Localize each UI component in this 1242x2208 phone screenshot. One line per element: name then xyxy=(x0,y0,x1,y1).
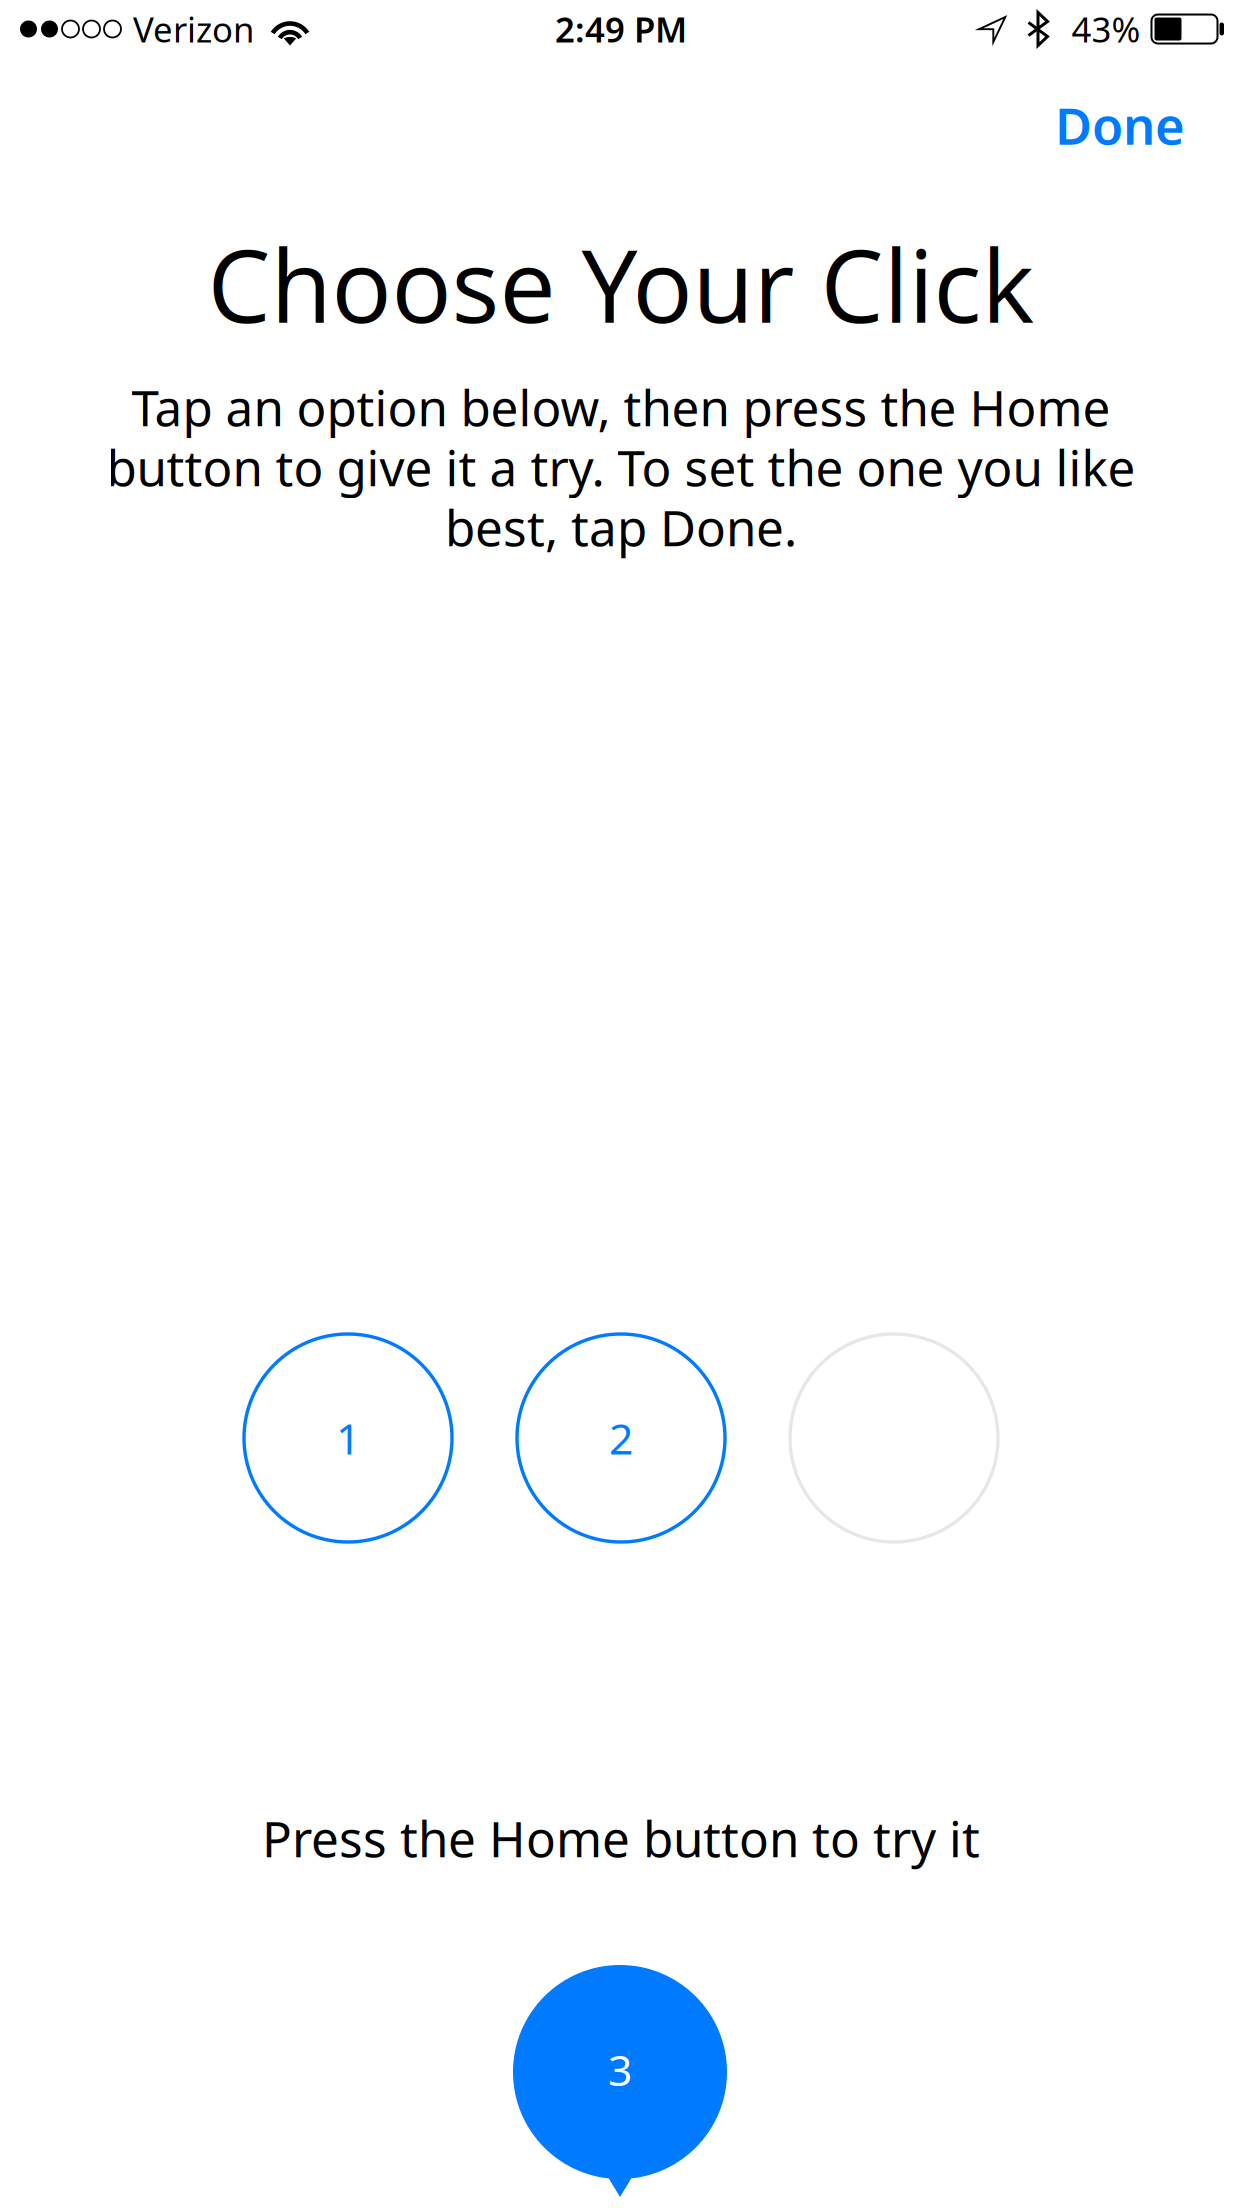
button[interactable]: Click speed 1 xyxy=(244,1334,452,1542)
staticText: best, tap Done. xyxy=(445,494,797,560)
staticText: 3 xyxy=(608,2041,632,2098)
staticText: Verizon xyxy=(133,6,254,52)
button[interactable]: Done xyxy=(1033,73,1207,177)
staticText: 1 xyxy=(336,1410,360,1466)
staticText: button to give it a try. To set the one … xyxy=(106,434,1135,500)
staticText: 2 xyxy=(609,1410,633,1466)
staticText: 43% xyxy=(1071,6,1140,52)
staticText: Tap an option below, then press the Home xyxy=(131,374,1110,440)
staticText: Done xyxy=(1055,91,1185,159)
button[interactable]: Third click speed xyxy=(790,1334,998,1542)
staticText: 2:49 PM xyxy=(555,6,687,52)
button[interactable]: Click speed 2 xyxy=(517,1334,725,1542)
staticText: Press the Home button to try it xyxy=(262,1805,980,1871)
staticText: Choose Your Click xyxy=(207,216,1034,352)
